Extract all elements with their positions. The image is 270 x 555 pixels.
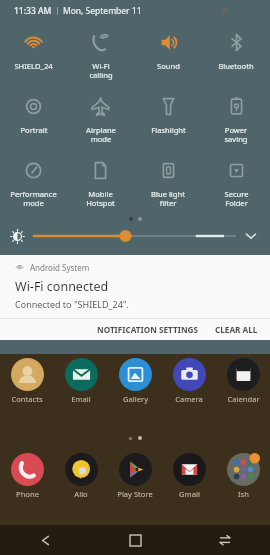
button[interactable]: Blue light filter: [134, 150, 202, 214]
staticText: Connected to "SHIELD_24".: [15, 298, 129, 310]
button[interactable]: Secure Folder: [202, 150, 270, 214]
staticText: Mobile Hotspot: [86, 189, 115, 209]
button[interactable]: CLEAR ALL: [207, 320, 270, 339]
button[interactable]: Contacts: [0, 358, 54, 416]
staticText: Bluetooth: [218, 61, 254, 71]
button[interactable]: Calendar: [216, 358, 270, 416]
button[interactable]: Phone: [0, 453, 54, 511]
button[interactable]: Performance mode: [0, 150, 67, 214]
staticText: Contacts: [11, 394, 43, 404]
staticText: Email: [71, 394, 91, 404]
staticText: Play Store: [117, 489, 153, 499]
button[interactable]: SHIELD_24: [0, 22, 67, 86]
staticText: Blue light filter: [151, 189, 185, 209]
staticText: Sound: [157, 61, 180, 71]
staticText: Camera: [175, 394, 203, 404]
button[interactable]: Sound: [134, 22, 202, 86]
button[interactable]: Portrait: [0, 86, 67, 150]
button[interactable]: Mobile Hotspot: [67, 150, 134, 214]
staticText: Gallery: [123, 394, 148, 404]
button[interactable]: Wi-Fi calling: [67, 22, 134, 86]
staticText: Gmail: [179, 489, 200, 499]
staticText: Power saving: [224, 125, 248, 145]
other: Brightness: [10, 229, 25, 244]
staticText: SHIELD_24: [14, 61, 53, 71]
staticText: Flashlight: [151, 125, 186, 135]
staticText: Airplane mode: [86, 125, 116, 145]
staticText: Phone: [16, 489, 39, 499]
staticText: Performance mode: [10, 189, 57, 209]
button[interactable]: Recent apps: [180, 525, 270, 555]
button[interactable]: Ish: [216, 453, 270, 511]
staticText: NOTIFICATION SETTINGS: [97, 324, 198, 335]
button[interactable]: Bluetooth: [202, 22, 270, 86]
button[interactable]: NOTIFICATION SETTINGS: [88, 320, 207, 339]
button[interactable]: Play Store: [108, 453, 162, 511]
staticText: Wi-Fi connected: [15, 278, 109, 295]
button[interactable]: Home: [90, 525, 180, 555]
button[interactable]: Allo: [54, 453, 108, 511]
staticText: Ish: [238, 489, 249, 499]
button[interactable]: Android System: [0, 255, 270, 318]
staticText: CLEAR ALL: [215, 324, 258, 335]
button[interactable]: Back: [0, 525, 90, 555]
staticText: Secure Folder: [224, 189, 249, 209]
staticText: Calendar: [227, 394, 260, 404]
button[interactable]: Flashlight: [134, 86, 202, 150]
staticText: 11:33 AM: [14, 5, 52, 17]
button[interactable]: Gallery: [108, 358, 162, 416]
button[interactable]: Power saving: [202, 86, 270, 150]
button[interactable]: Camera: [162, 358, 216, 416]
button[interactable]: Email: [54, 358, 108, 416]
staticText: Mon, September 11: [63, 5, 142, 17]
staticText: Android System: [30, 262, 90, 273]
staticText: Portrait: [20, 125, 48, 135]
staticText: Allo: [74, 489, 88, 499]
button[interactable]: Airplane mode: [67, 86, 134, 150]
button[interactable]: Gmail: [162, 453, 216, 511]
button[interactable]: Expand brightness settings: [242, 227, 260, 245]
staticText: Wi-Fi calling: [89, 61, 113, 81]
button[interactable]: [34, 226, 235, 246]
